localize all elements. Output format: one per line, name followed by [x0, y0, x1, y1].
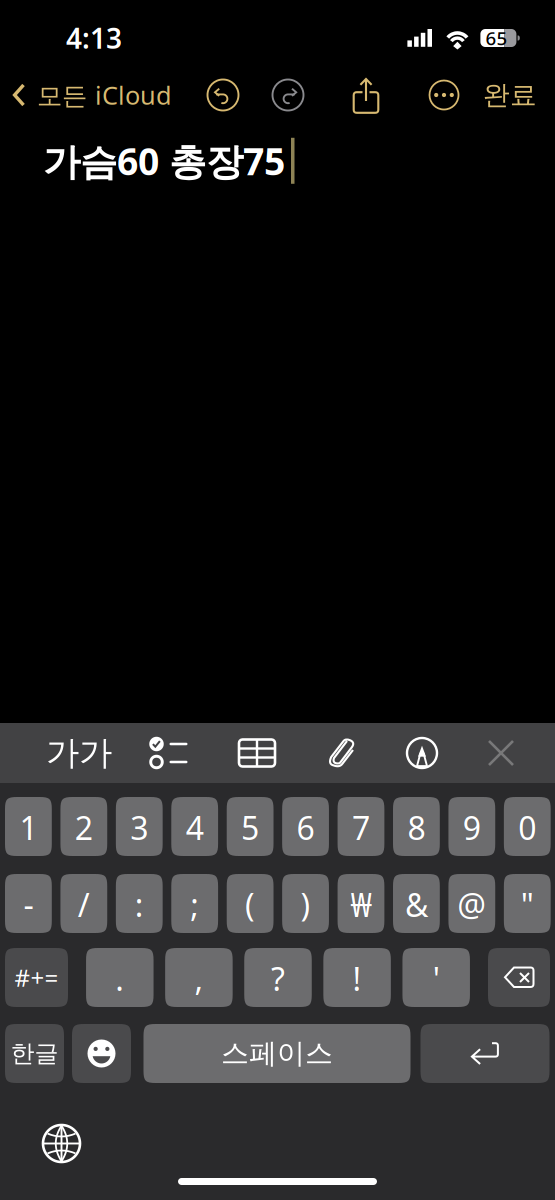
button[interactable]: ;: [171, 874, 218, 933]
button[interactable]: :: [116, 874, 163, 933]
button[interactable]: 마크업: [401, 723, 443, 783]
button[interactable]: !: [323, 948, 391, 1007]
button[interactable]: 공유: [348, 60, 384, 130]
button[interactable]: 첨부: [321, 723, 363, 783]
button[interactable]: 체크리스트: [147, 723, 191, 783]
staticText: 0: [518, 806, 536, 849]
button[interactable]: 삭제: [488, 948, 550, 1007]
button[interactable]: #+=: [5, 948, 68, 1007]
staticText: 9: [463, 806, 481, 849]
button[interactable]: ?: [244, 948, 312, 1007]
button[interactable]: 5: [227, 797, 273, 856]
staticText: 4:13: [66, 19, 122, 57]
staticText: (: [245, 883, 255, 926]
staticText: ': [433, 957, 440, 1000]
staticText: 가슴60 총장75: [43, 136, 285, 186]
staticText: ): [300, 883, 310, 926]
staticText: .: [115, 957, 124, 1000]
button[interactable]: 2: [60, 797, 107, 856]
button[interactable]: 스페이스: [143, 1024, 410, 1083]
staticText: 한글: [10, 1039, 58, 1068]
button[interactable]: 다음 키보드: [0, 1125, 80, 1162]
staticText: 3: [130, 806, 148, 849]
staticText: 2: [75, 806, 93, 849]
staticText: 모든 iCloud: [37, 78, 172, 112]
button[interactable]: /: [60, 874, 107, 933]
staticText: @: [457, 883, 486, 926]
staticText: 가가: [46, 732, 112, 773]
button[interactable]: &: [393, 874, 440, 933]
button[interactable]: @: [448, 874, 495, 933]
button[interactable]: ): [282, 874, 329, 933]
staticText: !: [353, 957, 362, 1000]
button[interactable]: -: [5, 874, 52, 933]
button[interactable]: 이모티콘: [72, 1024, 131, 1083]
staticText: -: [23, 883, 33, 926]
button[interactable]: 1: [5, 797, 52, 856]
button[interactable]: 가가: [51, 723, 107, 783]
button[interactable]: 6: [282, 797, 329, 856]
staticText: #+=: [14, 962, 58, 993]
staticText: 65: [485, 26, 507, 50]
button[interactable]: 3: [116, 797, 163, 856]
staticText: ,: [194, 957, 203, 1000]
staticText: 4: [186, 806, 204, 849]
staticText: /: [78, 883, 90, 926]
button[interactable]: ': [402, 948, 470, 1007]
button[interactable]: 한글: [5, 1024, 64, 1083]
button[interactable]: 7: [338, 797, 384, 856]
button[interactable]: .: [86, 948, 154, 1007]
button[interactable]: 줄바꿈: [420, 1024, 549, 1083]
staticText: 7: [352, 806, 370, 849]
button[interactable]: ": [504, 874, 551, 933]
staticText: :: [135, 883, 144, 926]
staticText: ;: [190, 883, 199, 926]
button[interactable]: 다시 실행: [267, 60, 309, 130]
button[interactable]: 더 보기: [426, 60, 462, 130]
staticText: 5: [241, 806, 259, 849]
button[interactable]: 실행 취소: [202, 60, 244, 130]
staticText: ₩: [350, 883, 371, 926]
staticText: ?: [271, 957, 285, 1000]
button[interactable]: 9: [448, 797, 495, 856]
button[interactable]: (: [227, 874, 273, 933]
button[interactable]: ₩: [338, 874, 384, 933]
button[interactable]: 완료: [480, 60, 540, 130]
button[interactable]: 4: [171, 797, 218, 856]
button[interactable]: 0: [504, 797, 551, 856]
button[interactable]: 모든 iCloud: [0, 60, 180, 130]
staticText: 6: [296, 806, 314, 849]
button[interactable]: 닫기: [480, 723, 522, 783]
button[interactable]: ,: [165, 948, 233, 1007]
staticText: 완료: [483, 79, 537, 111]
staticText: 8: [407, 806, 425, 849]
staticText: 스페이스: [221, 1036, 333, 1071]
staticText: 1: [19, 806, 37, 849]
button[interactable]: 표: [236, 723, 278, 783]
button[interactable]: 8: [393, 797, 440, 856]
staticText: ": [521, 883, 534, 926]
staticText: &: [405, 883, 428, 926]
